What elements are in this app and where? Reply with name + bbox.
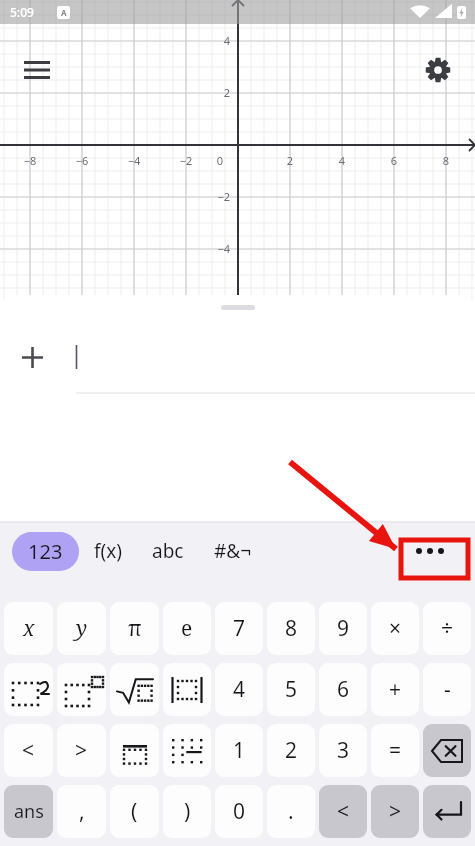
staticText: + bbox=[389, 675, 402, 704]
staticText: > bbox=[389, 797, 402, 826]
button[interactable]: More options bbox=[397, 533, 463, 569]
staticText: 9 bbox=[337, 614, 350, 643]
staticText: −6 bbox=[68, 153, 96, 168]
button[interactable]: π bbox=[110, 602, 159, 655]
staticText: ÷ bbox=[441, 614, 454, 643]
button[interactable]: > bbox=[371, 785, 419, 838]
staticText: π bbox=[128, 614, 142, 643]
staticText: 2 bbox=[200, 85, 230, 100]
staticText: 5 bbox=[285, 675, 298, 704]
button[interactable]: 8 bbox=[267, 602, 315, 655]
staticText: #&¬ bbox=[214, 538, 252, 564]
staticText: x bbox=[23, 614, 35, 643]
button[interactable]: ) bbox=[163, 785, 211, 838]
button[interactable]: 2 bbox=[267, 724, 315, 777]
staticText: A bbox=[61, 7, 67, 18]
staticText: −8 bbox=[16, 153, 44, 168]
staticText: ) bbox=[184, 797, 191, 826]
button[interactable]: 1 bbox=[215, 724, 263, 777]
button[interactable]: Square root bbox=[110, 663, 159, 716]
button[interactable]: 4 bbox=[215, 663, 263, 716]
staticText: 6 bbox=[337, 675, 350, 704]
button[interactable]: < bbox=[4, 724, 53, 777]
staticText: 2 bbox=[285, 736, 298, 765]
button[interactable]: f(x) bbox=[79, 530, 137, 572]
button[interactable]: Square bbox=[4, 663, 53, 716]
button[interactable]: × bbox=[371, 602, 419, 655]
staticText: 2 bbox=[276, 153, 304, 168]
staticText: 3 bbox=[337, 736, 350, 765]
button[interactable]: y bbox=[57, 602, 106, 655]
staticText: 4 bbox=[328, 153, 356, 168]
staticText: y bbox=[76, 614, 88, 643]
button[interactable]: 3 bbox=[319, 724, 367, 777]
staticText: = bbox=[389, 736, 402, 765]
staticText: 8 bbox=[432, 153, 460, 168]
button[interactable]: 7 bbox=[215, 602, 263, 655]
button[interactable]: Enter bbox=[423, 785, 471, 838]
button[interactable]: ( bbox=[110, 785, 159, 838]
staticText: 6 bbox=[380, 153, 408, 168]
staticText: ( bbox=[131, 797, 138, 826]
staticText: 7 bbox=[233, 614, 246, 643]
button[interactable]: ans bbox=[4, 785, 53, 838]
button[interactable]: ÷ bbox=[423, 602, 471, 655]
button[interactable]: Fraction bbox=[110, 724, 159, 777]
button[interactable]: Add expression bbox=[9, 334, 55, 380]
staticText: 5:09 bbox=[10, 4, 34, 20]
staticText: > bbox=[75, 736, 88, 765]
button[interactable]: Power bbox=[57, 663, 106, 716]
button[interactable]: e bbox=[163, 602, 211, 655]
button[interactable]: . bbox=[267, 785, 315, 838]
button[interactable]: Backspace bbox=[423, 724, 471, 777]
staticText: , bbox=[79, 797, 85, 826]
button[interactable]: x bbox=[4, 602, 53, 655]
button[interactable]: > bbox=[57, 724, 106, 777]
staticText: −2 bbox=[172, 153, 200, 168]
staticText: −4 bbox=[200, 241, 230, 256]
staticText: × bbox=[389, 614, 402, 643]
button[interactable]: , bbox=[57, 785, 106, 838]
button[interactable]: 123 bbox=[12, 532, 79, 571]
button[interactable]: + bbox=[371, 663, 419, 716]
staticText: < bbox=[337, 797, 350, 826]
button[interactable]: < bbox=[319, 785, 367, 838]
button[interactable]: 6 bbox=[319, 663, 367, 716]
staticText: −4 bbox=[120, 153, 148, 168]
staticText: < bbox=[22, 736, 35, 765]
button[interactable]: Menu bbox=[14, 47, 60, 93]
staticText: −2 bbox=[200, 189, 230, 204]
button[interactable]: Matrix bbox=[163, 724, 211, 777]
button[interactable]: 5 bbox=[267, 663, 315, 716]
button[interactable]: 9 bbox=[319, 602, 367, 655]
staticText: e bbox=[181, 614, 193, 643]
staticText: - bbox=[444, 675, 451, 704]
button[interactable]: = bbox=[371, 724, 419, 777]
button[interactable]: Absolute value bbox=[163, 663, 211, 716]
staticText: 0 bbox=[233, 797, 246, 826]
staticText: 8 bbox=[285, 614, 298, 643]
button[interactable]: abc bbox=[137, 530, 199, 572]
staticText: . bbox=[288, 797, 294, 826]
button[interactable]: 0 bbox=[215, 785, 263, 838]
button[interactable]: Settings bbox=[415, 47, 461, 93]
staticText: abc bbox=[152, 538, 184, 564]
staticText: 0 bbox=[210, 153, 230, 168]
staticText: 123 bbox=[28, 538, 63, 565]
staticText: f(x) bbox=[94, 538, 122, 564]
button[interactable]: #&¬ bbox=[199, 530, 267, 572]
staticText: 1 bbox=[233, 736, 246, 765]
staticText: 4 bbox=[233, 675, 246, 704]
staticText: 4 bbox=[200, 33, 230, 48]
button[interactable]: - bbox=[423, 663, 471, 716]
staticText: ans bbox=[14, 799, 44, 824]
